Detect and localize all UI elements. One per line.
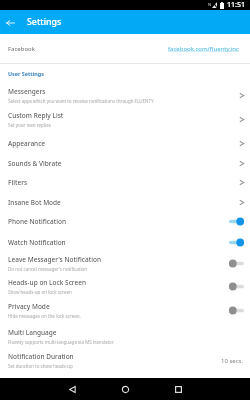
staticText: Show heads-up on lock screen	[8, 289, 72, 295]
staticText: Set duration to show heads-up	[8, 363, 73, 369]
staticText: Custom Reply List	[8, 111, 64, 120]
button[interactable]: Home	[115, 379, 135, 399]
button[interactable]: Privacy Mode	[0, 301, 250, 320]
button[interactable]: Filters	[0, 175, 250, 189]
staticText: Set your own replies	[8, 122, 51, 128]
button[interactable]: Custom Reply List	[0, 110, 250, 129]
staticText: Sounds & Vibrate	[8, 159, 62, 168]
staticText: Notification Duration	[8, 352, 74, 361]
staticText: facebook.com/fluenty.inc	[168, 45, 239, 53]
staticText: Leave Messager's Notification	[8, 255, 101, 264]
button[interactable]: Phone Notification	[0, 214, 250, 228]
staticText: Do not cancel messager's notification	[8, 266, 88, 272]
staticText: Facebook	[8, 45, 35, 53]
staticText: Select apps which you want to receive no…	[8, 98, 154, 104]
button[interactable]: Watch Notification	[0, 235, 250, 249]
button[interactable]: Appearance	[0, 136, 250, 150]
button[interactable]: Toggle off	[229, 305, 244, 316]
button[interactable]: Heads-up on Lock Screen	[0, 277, 250, 296]
staticText: N	[208, 2, 212, 7]
staticText: User Settings	[8, 70, 44, 77]
staticText: Multi Language	[8, 328, 57, 337]
button[interactable]: Facebook	[0, 34, 250, 63]
button[interactable]: Notification Duration	[0, 351, 250, 370]
button[interactable]: Toggle on	[229, 216, 244, 227]
button[interactable]: Toggle off	[229, 281, 244, 292]
button[interactable]: Multi Language	[0, 327, 250, 346]
staticText: Heads-up on Lock Screen	[8, 278, 86, 287]
staticText: Filters	[8, 178, 28, 187]
staticText: Fluenty supports multi-language via MS t…	[8, 339, 114, 345]
staticText: Phone Notification	[8, 217, 67, 226]
button[interactable]: Sounds & Vibrate	[0, 156, 250, 170]
button[interactable]: Leave Messager's Notification	[0, 254, 250, 273]
button[interactable]: Messengers	[0, 86, 250, 105]
button[interactable]: Back	[0, 12, 21, 33]
staticText: Messengers	[8, 87, 46, 96]
staticText: 11:51	[227, 0, 245, 10]
button[interactable]: Toggle off	[229, 258, 244, 269]
button[interactable]: Toggle on	[229, 237, 244, 248]
staticText: Settings	[27, 16, 62, 28]
staticText: Hide messages on the lock screen.	[8, 313, 81, 319]
button[interactable]: Back	[62, 379, 82, 399]
button[interactable]: Recents	[168, 379, 188, 399]
button[interactable]: Insane Bot Mode	[0, 195, 250, 209]
staticText: Appearance	[8, 139, 46, 148]
staticText: Insane Bot Mode	[8, 198, 61, 207]
staticText: 10 secs.	[221, 357, 244, 365]
staticText: Watch Notification	[8, 238, 66, 247]
staticText: Privacy Mode	[8, 302, 50, 311]
